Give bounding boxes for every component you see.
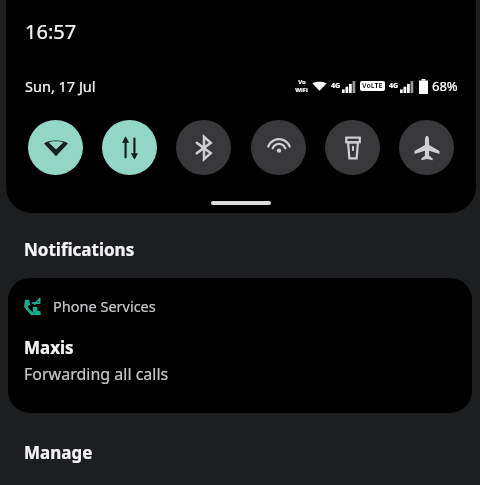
button[interactable]: Mobile data xyxy=(102,120,157,175)
staticText: Forwarding all calls xyxy=(24,363,169,385)
staticText: Vo xyxy=(298,78,306,86)
staticText: Phone Services xyxy=(53,296,156,316)
staticText: 16:57 xyxy=(25,18,77,45)
button[interactable]: Flashlight xyxy=(325,120,380,175)
button[interactable]: Phone Services xyxy=(8,278,472,413)
staticText: VoLTE xyxy=(362,81,383,91)
staticText: 68% xyxy=(432,77,458,95)
button[interactable]: Bluetooth xyxy=(176,120,231,175)
button[interactable]: Wi-Fi xyxy=(28,120,83,175)
staticText: 4G xyxy=(389,81,399,91)
button[interactable]: Manage xyxy=(0,429,480,464)
button[interactable]: Airplane mode xyxy=(399,120,454,175)
button[interactable]: Hotspot xyxy=(251,120,306,175)
staticText: Sun, 17 Jul xyxy=(25,76,96,96)
staticText: Notifications xyxy=(24,238,135,261)
staticText: Manage xyxy=(24,441,93,464)
staticText: WiFi xyxy=(295,86,308,94)
staticText: Maxis xyxy=(24,336,74,359)
staticText: 4G xyxy=(331,81,341,91)
